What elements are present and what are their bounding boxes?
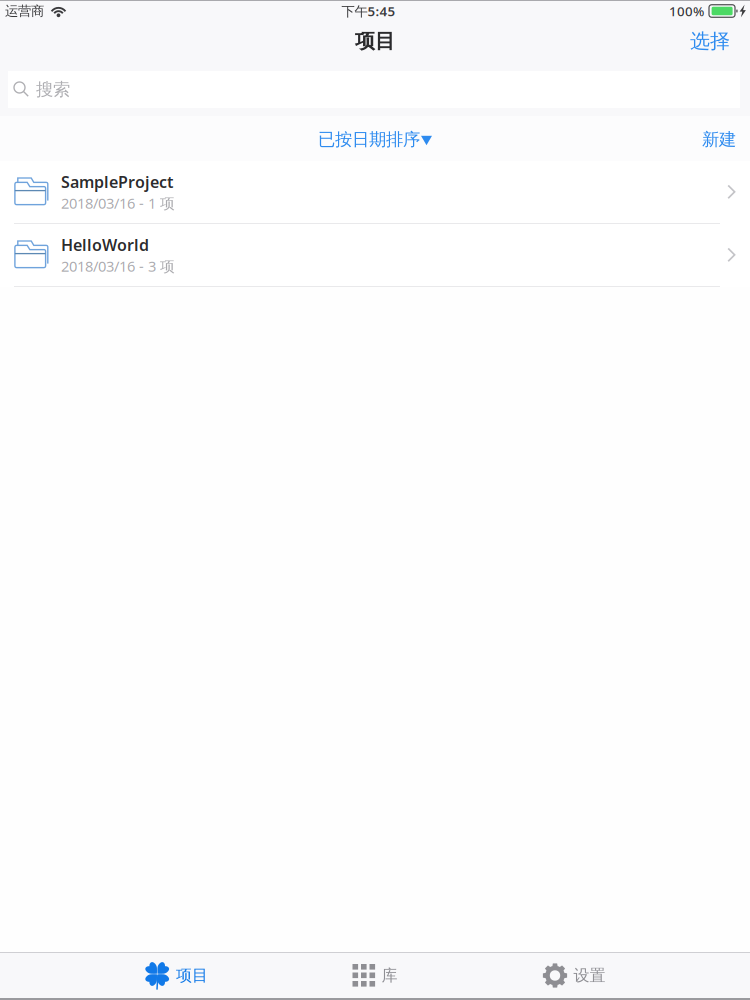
staticText: 设置	[573, 966, 605, 985]
staticText: 100%	[669, 2, 704, 20]
staticText: 下午5:45	[341, 2, 395, 20]
button[interactable]: 库	[352, 953, 398, 998]
staticText: HelloWorld	[61, 234, 149, 255]
button[interactable]: 选择	[690, 29, 750, 63]
staticText: 新建	[702, 129, 736, 150]
button[interactable]: 新建	[702, 127, 750, 150]
button[interactable]: SampleProject	[0, 161, 750, 224]
staticText: 项目	[176, 966, 208, 985]
staticText: 运营商	[5, 3, 44, 19]
staticText: 库	[381, 966, 397, 985]
staticText: 项目	[355, 29, 395, 53]
staticText: 已按日期排序	[318, 129, 420, 150]
button[interactable]: 项目	[0, 953, 352, 998]
staticText: 2018/03/16 - 3 项	[61, 256, 175, 276]
staticText: SampleProject	[61, 171, 173, 192]
button[interactable]: 设置	[398, 953, 750, 998]
staticText: 选择	[690, 29, 730, 53]
button[interactable]: 搜索	[0, 71, 750, 108]
button[interactable]: HelloWorld	[0, 224, 750, 287]
button[interactable]: 已按日期排序	[318, 127, 432, 150]
staticText: 搜索	[36, 79, 70, 100]
staticText: 2018/03/16 - 1 项	[61, 193, 175, 213]
